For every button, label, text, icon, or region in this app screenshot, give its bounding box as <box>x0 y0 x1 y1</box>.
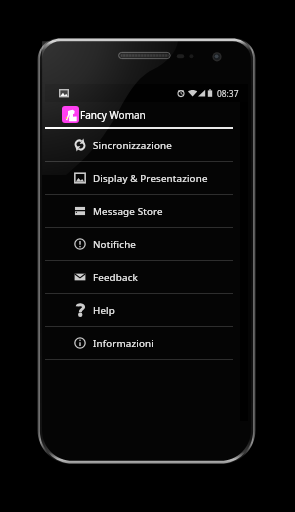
staticText: Fancy Woman <box>80 108 146 122</box>
staticText: Feedback <box>93 271 138 284</box>
staticText: Notifiche <box>93 238 137 251</box>
button[interactable]: Fancy Woman <box>45 102 240 127</box>
button[interactable]: Notifiche <box>45 228 240 260</box>
button[interactable]: Sincronizzazione <box>45 129 240 161</box>
button[interactable]: Display & Presentazione <box>45 162 240 194</box>
button[interactable]: Feedback <box>45 261 240 293</box>
button[interactable]: Message Store <box>45 195 240 227</box>
staticText: Sincronizzazione <box>93 139 172 152</box>
staticText: Display & Presentazione <box>93 172 208 185</box>
button[interactable]: Informazioni <box>45 327 240 359</box>
staticText: Help <box>93 304 115 317</box>
staticText: Message Store <box>93 205 163 218</box>
staticText: 08:37 <box>217 88 239 99</box>
button[interactable]: Help <box>45 294 240 326</box>
staticText: Informazioni <box>93 337 154 350</box>
